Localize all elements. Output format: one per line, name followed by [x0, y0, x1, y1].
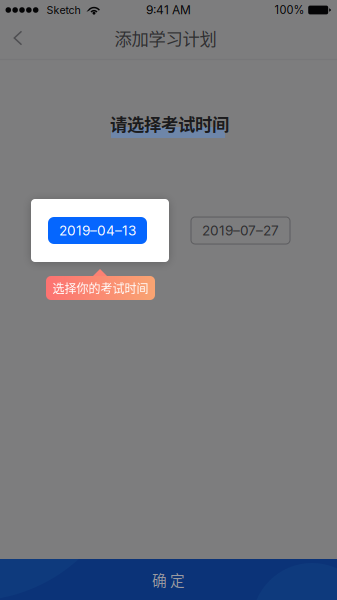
staticText: 确 定	[152, 569, 185, 590]
button[interactable]: 2019–07–27	[191, 217, 290, 244]
staticText: 选择你的考试时间	[52, 279, 148, 297]
staticText: 9:41 AM	[146, 3, 191, 17]
button[interactable]: 2019–04–13	[48, 217, 147, 244]
staticText: 2019–04–13	[59, 222, 136, 239]
staticText: 2019–07–27	[202, 222, 279, 239]
staticText: 100%	[274, 3, 304, 17]
button[interactable]: Back	[3, 22, 33, 54]
staticText: Sketch	[46, 3, 80, 16]
staticText: 请选择考试时间	[110, 111, 229, 136]
staticText: 添加学习计划	[114, 25, 216, 51]
button[interactable]: 确 定	[0, 559, 337, 600]
